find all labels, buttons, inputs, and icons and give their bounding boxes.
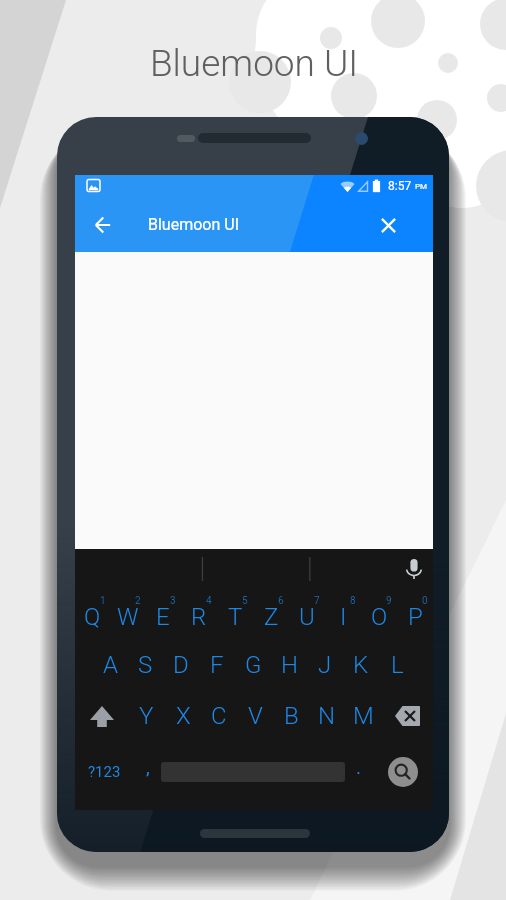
button[interactable]: ?123 [75,744,134,810]
button[interactable]: J [307,638,343,688]
button[interactable]: L [379,638,415,688]
staticText: 7 [314,595,320,607]
button[interactable]: D [163,638,199,688]
staticText: Q [84,603,101,631]
staticText: P [408,603,423,631]
button[interactable]: 3 [145,591,181,638]
staticText: S [138,651,153,679]
staticText: C [211,702,227,730]
button[interactable]: Voice input [406,559,422,580]
button[interactable]: G [235,638,271,688]
staticText: E [156,603,170,631]
button[interactable]: H [271,638,307,688]
staticText: Y [139,702,154,730]
staticText: L [391,651,404,679]
button[interactable]: A [93,638,128,688]
staticText: R [191,603,207,631]
staticText: . [356,756,362,778]
button[interactable]: N [309,688,345,744]
staticText: , [146,756,150,778]
button[interactable]: B [273,688,309,744]
staticText: U [299,603,315,631]
button[interactable]: 4 [181,591,217,638]
button[interactable]: Shift [75,688,128,744]
button[interactable]: . [345,744,373,810]
button[interactable]: 9 [361,591,397,638]
button[interactable]: F [199,638,235,688]
staticText: Bluemoon UI [1,42,506,85]
button[interactable]: 0 [397,591,433,638]
staticText: A [103,651,118,679]
staticText: 8 [350,595,356,607]
staticText: 5 [242,595,248,607]
button[interactable]: Backspace [381,688,433,744]
button[interactable]: C [201,688,237,744]
staticText: 3 [170,595,176,607]
button[interactable]: Close [373,210,403,240]
staticText: 8:57 [388,179,412,193]
button[interactable]: Search [388,757,418,787]
staticText: G [245,651,262,679]
button[interactable]: 2 [110,591,145,638]
button[interactable]: 7 [289,591,325,638]
staticText: ?123 [88,763,121,781]
button[interactable]: 6 [253,591,289,638]
staticText: PM [415,182,428,191]
staticText: 2 [135,595,141,607]
staticText: M [353,702,374,730]
staticText: B [284,702,299,730]
staticText: K [353,651,369,679]
button[interactable]: K [343,638,379,688]
staticText: I [340,603,347,631]
staticText: D [173,651,189,679]
staticText: Bluemoon UI [148,215,239,234]
staticText: 9 [386,595,392,607]
staticText: W [117,603,139,631]
button[interactable]: X [165,688,201,744]
staticText: 6 [278,595,284,607]
staticText: H [281,651,298,679]
button[interactable]: V [237,688,273,744]
staticText: F [210,651,224,679]
button[interactable]: M [345,688,381,744]
button[interactable]: 5 [217,591,253,638]
staticText: J [318,651,332,679]
staticText: 4 [206,595,212,607]
button[interactable]: Back [88,210,118,240]
staticText: O [371,603,388,631]
staticText: N [318,702,336,730]
staticText: Z [264,603,279,631]
staticText: X [176,702,191,730]
staticText: 1 [100,595,106,607]
button[interactable]: Y [128,688,165,744]
staticText: V [248,702,263,730]
staticText: 0 [422,595,428,607]
button[interactable]: 1 [75,591,110,638]
button[interactable]: , [134,744,161,810]
button[interactable]: 8 [325,591,361,638]
button[interactable]: S [128,638,163,688]
staticText: T [228,603,243,631]
